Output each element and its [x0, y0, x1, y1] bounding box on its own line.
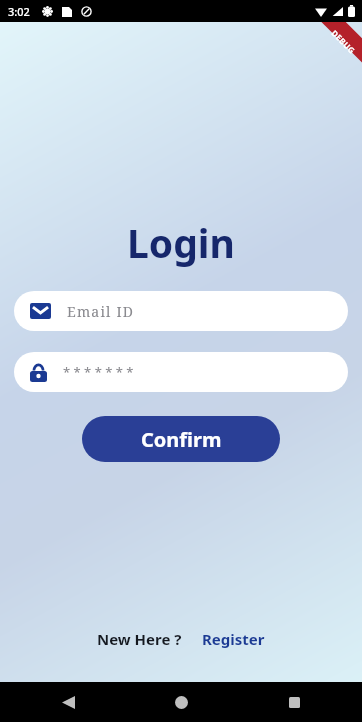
- staticText: New Here ?: [97, 629, 182, 649]
- staticText: DEBUG: [329, 27, 358, 56]
- staticText: Confirm: [141, 426, 222, 453]
- button[interactable]: * * * * * * *: [14, 352, 348, 392]
- staticText: 3:02: [8, 4, 30, 19]
- button[interactable]: Home: [163, 684, 199, 720]
- button[interactable]: Back: [50, 684, 86, 720]
- staticText: Email ID: [67, 302, 135, 321]
- staticText: Register: [202, 629, 265, 649]
- button[interactable]: Recent apps: [276, 684, 312, 720]
- button[interactable]: Register: [199, 624, 268, 654]
- button[interactable]: Confirm: [82, 416, 280, 462]
- staticText: Login: [127, 216, 235, 269]
- button[interactable]: Email ID: [14, 291, 348, 331]
- button[interactable]: New Here ?: [94, 624, 185, 654]
- staticText: * * * * * * *: [63, 363, 134, 381]
